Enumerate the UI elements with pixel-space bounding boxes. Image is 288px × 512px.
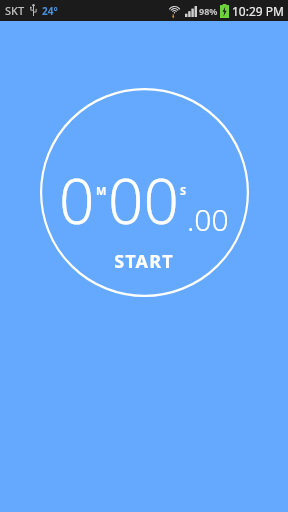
staticText: M — [96, 183, 107, 198]
staticText: .00 — [187, 199, 229, 240]
staticText: 98% — [199, 5, 218, 17]
staticText: S — [180, 183, 187, 198]
staticText: 10:29 PM — [232, 3, 284, 19]
staticText: 24° — [42, 4, 58, 18]
staticText: 0 — [59, 158, 95, 242]
staticText: START — [114, 249, 174, 274]
staticText: SKT — [5, 3, 25, 18]
button[interactable]: START — [100, 246, 188, 277]
staticText: 00 — [108, 158, 179, 242]
button[interactable]: Stopwatch dial — [40, 88, 249, 297]
